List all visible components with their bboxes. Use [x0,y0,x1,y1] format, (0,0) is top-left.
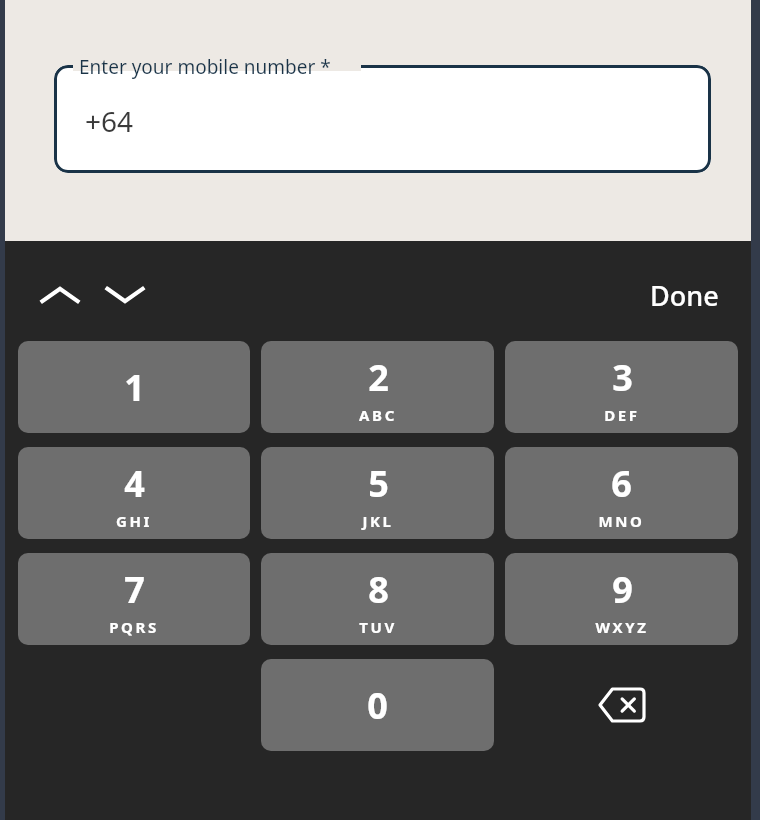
staticText: DEF [604,405,640,425]
button[interactable]: 4 [18,447,250,539]
staticText: 8 [368,565,389,614]
button[interactable]: 8 [261,553,494,645]
button[interactable]: 3 [505,341,738,433]
staticText: PQRS [109,617,159,637]
staticText: 9 [612,565,633,614]
button[interactable]: Previous field [34,273,86,317]
staticText: MNO [598,511,645,531]
button[interactable]: 1 [18,341,250,433]
staticText: 5 [368,459,389,508]
button[interactable]: 5 [261,447,494,539]
staticText: 4 [124,459,145,508]
button[interactable]: 7 [18,553,250,645]
staticText: TUV [359,617,397,637]
staticText: 3 [612,353,633,402]
button[interactable]: Backspace [505,659,738,751]
staticText: 2 [368,353,389,402]
staticText: +64 [85,102,134,140]
button[interactable]: 2 [261,341,494,433]
staticText: Enter your mobile number * [79,54,331,80]
button[interactable]: 9 [505,553,738,645]
staticText: 7 [124,565,145,614]
staticText: GHI [116,511,152,531]
staticText: ABC [359,405,397,425]
staticText: JKL [362,511,394,531]
staticText: 0 [367,681,388,730]
staticText: WXYZ [595,617,649,637]
button[interactable]: 0 [261,659,494,751]
staticText: 6 [611,459,632,508]
button[interactable]: Next field [99,273,151,317]
button[interactable]: 6 [505,447,738,539]
button[interactable]: Enter your mobile number * [54,60,711,173]
staticText: 1 [124,363,145,412]
button[interactable]: Done [640,271,729,320]
staticText: Done [650,277,719,314]
